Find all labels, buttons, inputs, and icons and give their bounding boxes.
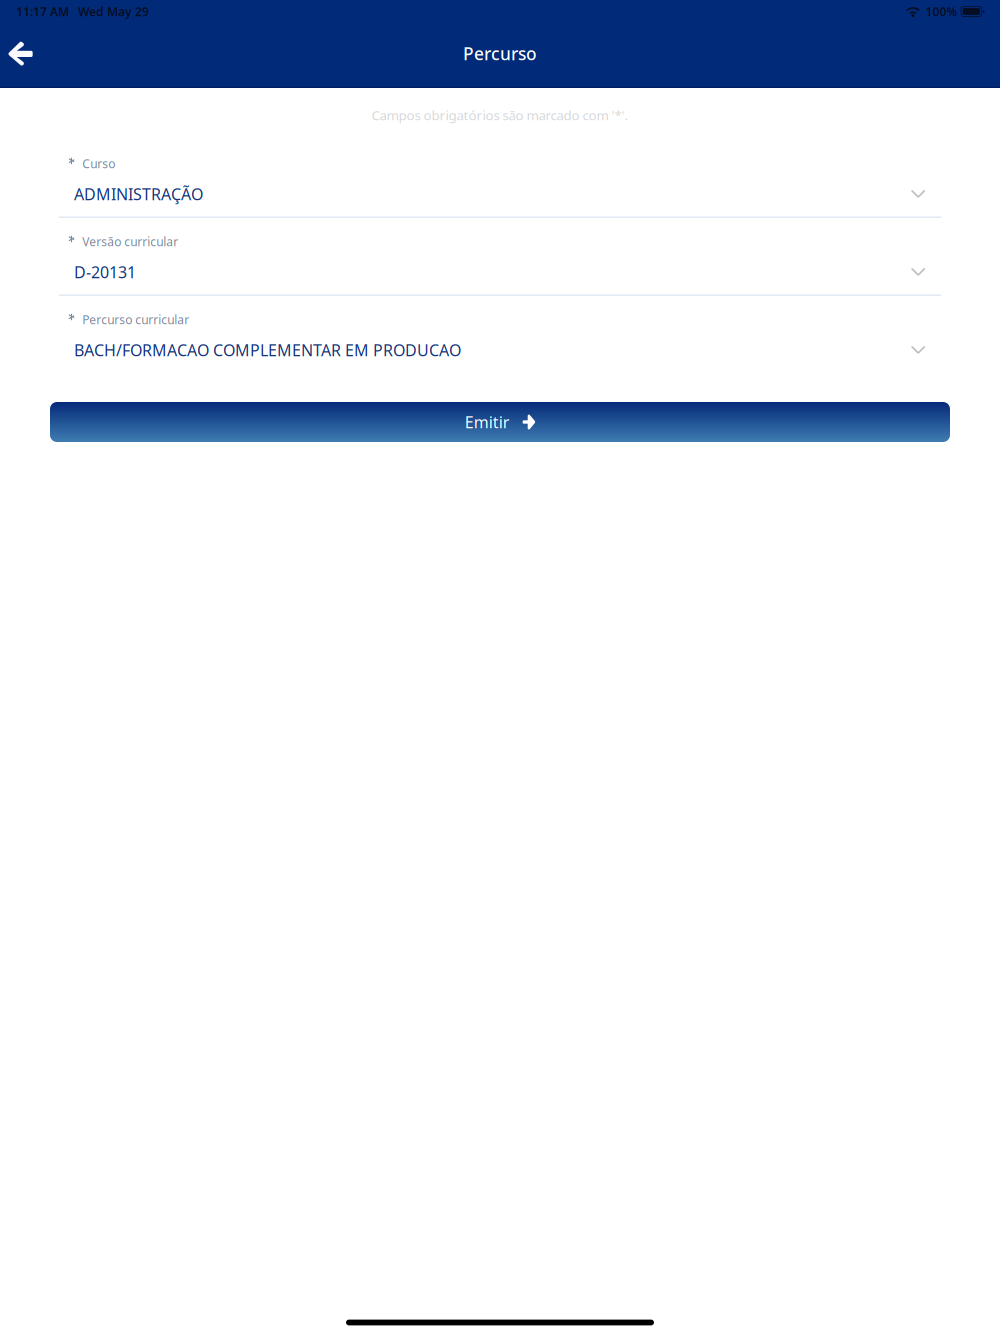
staticText: D-20131 — [74, 261, 136, 283]
button[interactable]: Percurso curricular — [0, 296, 1000, 374]
staticText: Curso — [82, 155, 115, 171]
staticText: Versão curricular — [82, 233, 178, 249]
staticText: BACH/FORMACAO COMPLEMENTAR EM PRODUCAO — [74, 339, 461, 361]
staticText: 11:17 AM — [16, 3, 69, 19]
staticText: Percurso curricular — [82, 311, 189, 327]
staticText: ADMINISTRAÇÃO — [74, 183, 203, 205]
staticText: Emitir — [465, 411, 510, 433]
button[interactable]: Versão curricular — [0, 218, 1000, 296]
staticText: 100% — [926, 3, 958, 19]
button[interactable]: Back — [0, 28, 41, 88]
staticText: Campos obrigatórios são marcado com '*'. — [371, 106, 628, 124]
staticText: Wed May 29 — [78, 3, 149, 19]
staticText: Percurso — [463, 42, 537, 65]
button[interactable]: Curso — [0, 140, 1000, 218]
button[interactable]: Emitir — [0, 402, 1000, 442]
